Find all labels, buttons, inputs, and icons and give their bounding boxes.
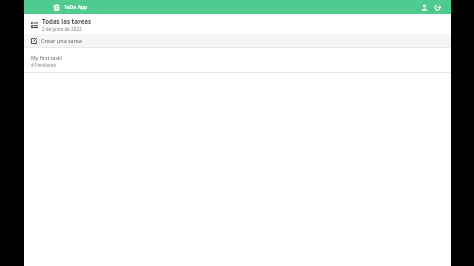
button[interactable]: Crear una tarea xyxy=(24,34,451,48)
staticText: ToDo App xyxy=(64,4,88,11)
button[interactable]: My first task! xyxy=(24,52,451,73)
staticText: 2 de junio de 2022 xyxy=(42,26,82,32)
button[interactable]: ToDo App xyxy=(52,3,88,12)
staticText: My first task! xyxy=(31,54,63,61)
staticText: Todas las tareas xyxy=(42,17,92,25)
staticText: # Pendiente xyxy=(31,62,56,68)
button[interactable]: Account xyxy=(419,2,430,13)
button[interactable]: Todas las tareas xyxy=(24,14,451,34)
button[interactable]: Log out xyxy=(432,2,443,13)
staticText: Crear una tarea xyxy=(41,37,82,45)
